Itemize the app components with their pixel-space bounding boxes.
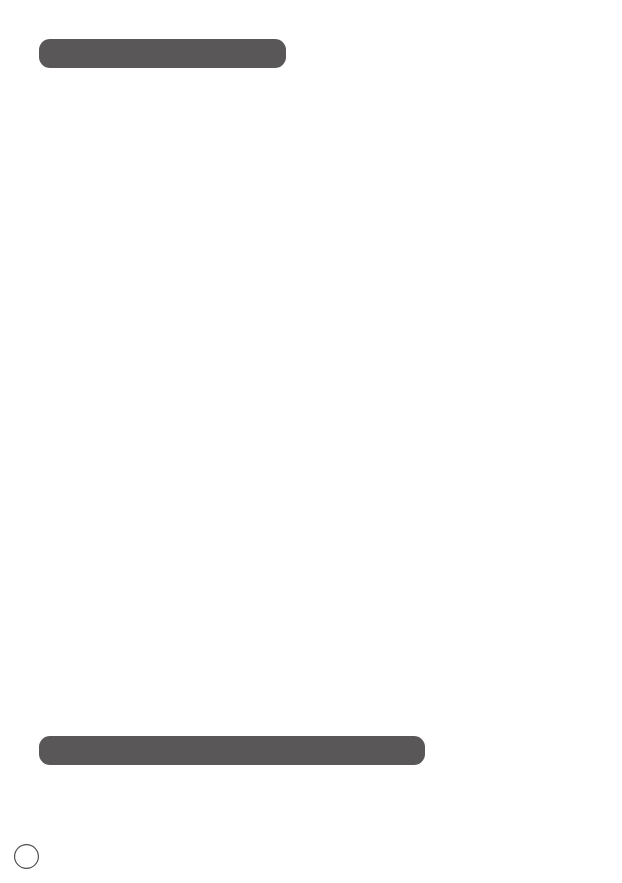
- button[interactable]: Header: [39, 39, 286, 68]
- button[interactable]: Action bar: [39, 736, 425, 765]
- button[interactable]: Select: [14, 844, 39, 869]
